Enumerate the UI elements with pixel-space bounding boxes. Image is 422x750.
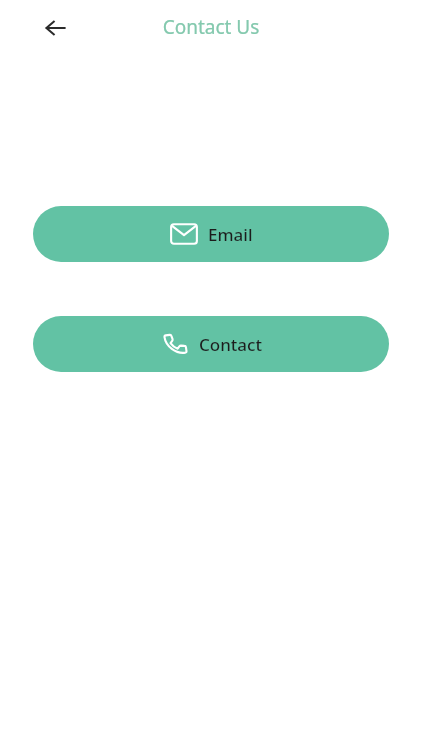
staticText: Contact Us [0, 14, 422, 40]
button[interactable]: Back [36, 10, 76, 46]
button[interactable]: Email [33, 206, 389, 262]
staticText: Email [208, 223, 253, 246]
button[interactable]: Contact [33, 316, 389, 372]
staticText: Contact [199, 333, 262, 356]
